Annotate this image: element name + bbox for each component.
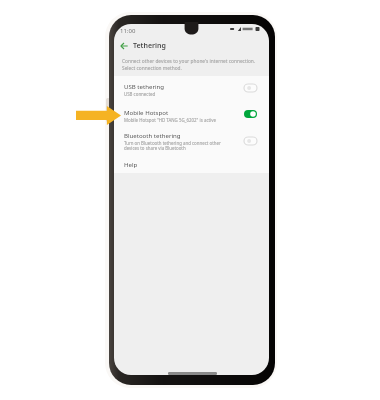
button[interactable]: Turn on bbox=[242, 135, 258, 147]
staticText: Help bbox=[124, 160, 138, 168]
button[interactable]: Turn on bbox=[242, 82, 258, 94]
staticText: Turn on Bluetooth tethering and connect … bbox=[124, 140, 221, 152]
staticText: USB tethering bbox=[124, 82, 164, 90]
staticText: Mobile Hotspot bbox=[124, 108, 169, 116]
staticText: Connect other devices to your phone's in… bbox=[122, 58, 264, 72]
button[interactable]: Help bbox=[114, 155, 269, 173]
button[interactable]: Bluetooth tethering bbox=[114, 128, 269, 155]
staticText: Mobile Hotspot "HD TANG 5G_6202" is acti… bbox=[124, 117, 216, 123]
button[interactable]: Turn off bbox=[242, 108, 258, 120]
button[interactable]: Mobile Hotspot bbox=[114, 102, 269, 128]
button[interactable]: USB tethering bbox=[114, 76, 269, 102]
button[interactable]: Back bbox=[118, 40, 129, 51]
staticText: Bluetooth tethering bbox=[124, 131, 181, 139]
staticText: Tethering bbox=[133, 41, 166, 51]
staticText: 11:00 bbox=[120, 27, 136, 35]
staticText: USB connected bbox=[124, 91, 156, 97]
